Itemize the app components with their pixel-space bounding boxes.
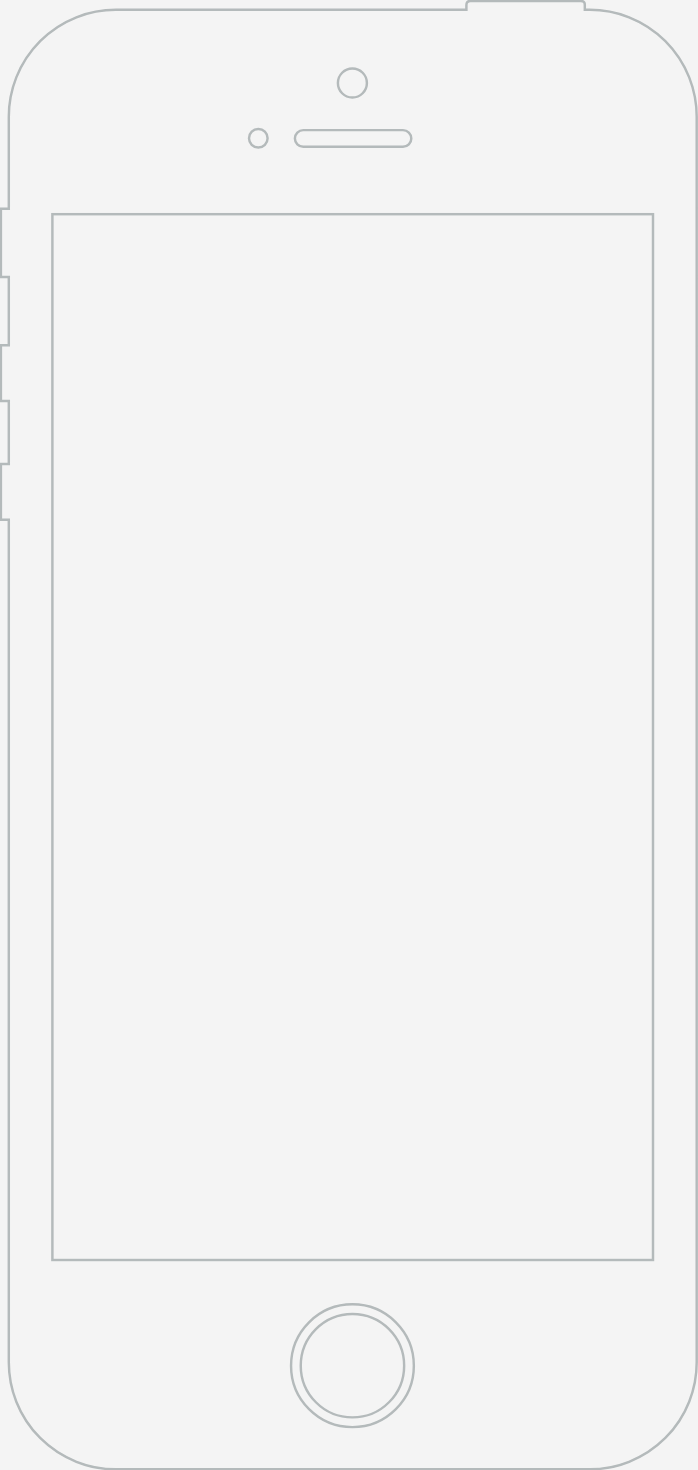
- button[interactable]: Home button: [291, 1304, 414, 1427]
- button[interactable]: Volume down: [1, 464, 10, 520]
- button[interactable]: Silent mode switch: [1, 209, 10, 277]
- button[interactable]: Volume up: [1, 345, 10, 401]
- button[interactable]: Power button: [466, 0, 584, 16]
- button[interactable]: Phone display: [52, 214, 653, 1260]
